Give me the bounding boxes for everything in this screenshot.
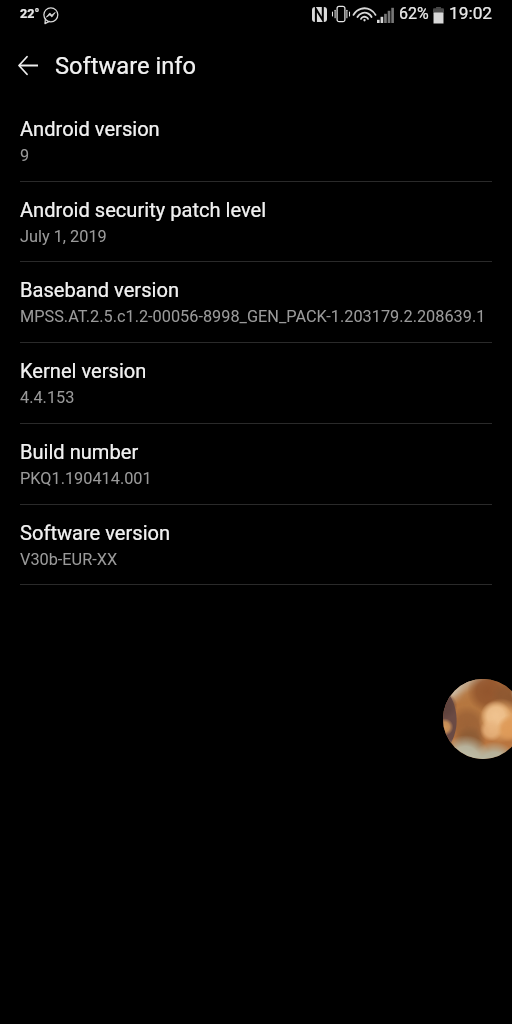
staticText: 62% [399,4,429,23]
staticText: PKQ1.190414.001 [20,469,152,488]
staticText: V30b-EUR-XX [20,550,118,569]
staticText: Android version [20,117,160,141]
staticText: 9 [20,146,30,165]
staticText: 22° [20,6,40,21]
staticText: Android security patch level [20,198,267,222]
staticText: MPSS.AT.2.5.c1.2-00056-8998_GEN_PACK-1.2… [20,307,486,326]
button[interactable]: Build number [0,424,512,505]
button[interactable]: Android version [0,101,512,182]
staticText: 4.4.153 [20,388,75,407]
button[interactable]: Kernel version [0,343,512,424]
staticText: Software info [55,52,197,80]
button[interactable]: Chat head bubble [443,679,512,759]
staticText: Software version [20,521,171,545]
staticText: July 1, 2019 [20,227,107,246]
button[interactable]: Android security patch level [0,182,512,262]
staticText: Kernel version [20,359,147,383]
button[interactable]: Back [8,45,48,85]
button[interactable]: Baseband version [0,262,512,343]
button[interactable]: Software version [0,505,512,585]
staticText: Build number [20,440,139,464]
staticText: 19:02 [449,3,493,23]
staticText: Baseband version [20,278,179,302]
